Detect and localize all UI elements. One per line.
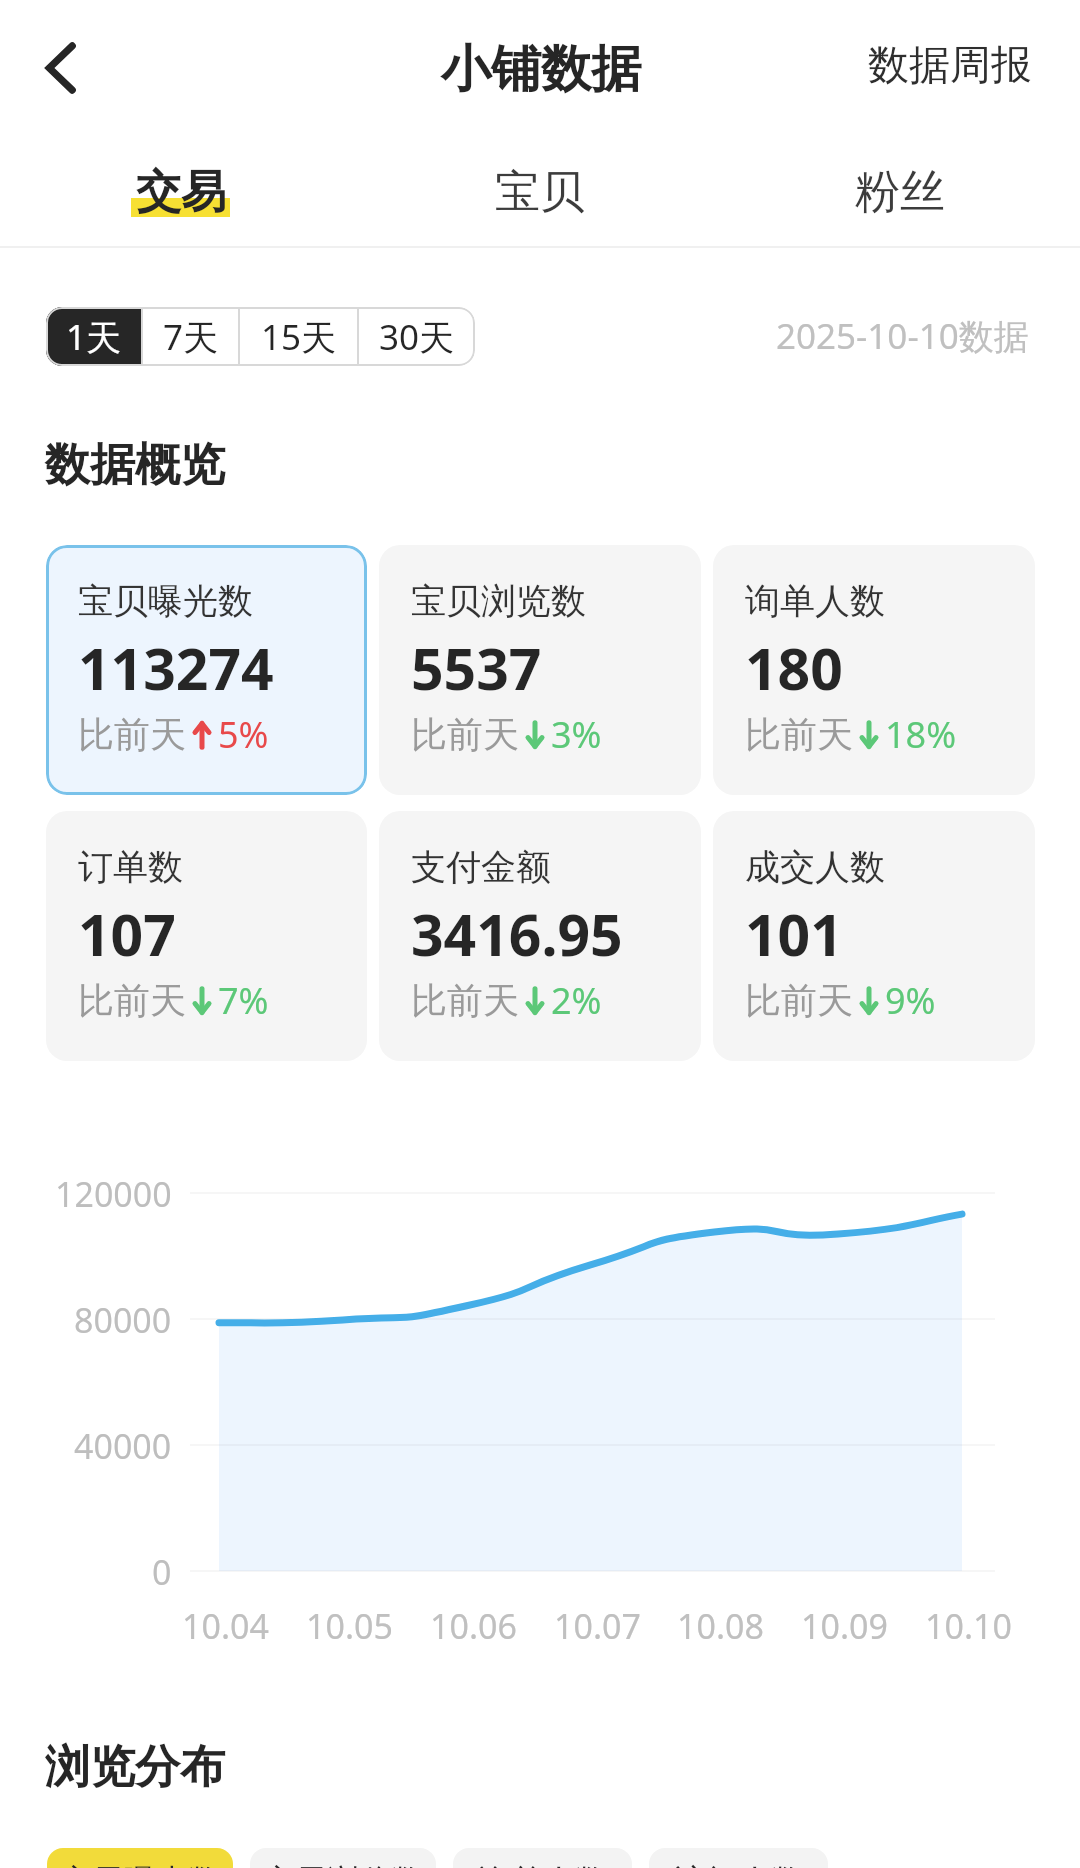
staticText: 107 [78,895,176,973]
staticText: 访问人数 [675,1861,803,1868]
staticText: 9% [885,976,936,1025]
button[interactable]: 数据周报 [868,40,1032,92]
staticText: 10.06 [430,1603,517,1649]
button[interactable]: 宝贝曝光数 [47,1848,233,1868]
staticText: 180 [745,629,843,707]
staticText: 比前天 [745,978,853,1023]
staticText: 3416.95 [411,895,623,973]
staticText: 小铺数据 [441,38,641,101]
button[interactable]: 15天 [240,307,357,366]
staticText: 成交人数 [745,845,885,889]
staticText: 宝贝 [495,164,585,221]
staticText: 113274 [78,629,274,707]
button[interactable]: 询单人数 [453,1848,632,1868]
button[interactable]: 宝贝浏览数 [250,1848,436,1868]
staticText: 粉丝 [855,164,945,221]
staticText: 10.07 [554,1603,641,1649]
button[interactable]: 返回 [14,24,102,112]
staticText: 2% [551,976,602,1025]
staticText: 3% [551,710,602,759]
button[interactable]: 7天 [143,307,238,366]
button[interactable]: 宝贝浏览数 [379,545,701,795]
staticText: 订单数 [78,845,183,889]
staticText: 比前天 [745,712,853,757]
staticText: 5537 [411,629,542,707]
button[interactable]: 订单数 [46,811,367,1061]
staticText: 比前天 [411,978,519,1023]
staticText: 宝贝浏览数 [263,1861,423,1868]
staticText: 40000 [74,1423,172,1469]
staticText: 10.05 [306,1603,393,1649]
staticText: 比前天 [78,978,186,1023]
staticText: 支付金额 [411,845,551,889]
staticText: 7天 [163,313,219,361]
button[interactable]: 宝贝 [360,146,720,238]
staticText: 2025-10-10数据 [776,312,1029,360]
staticText: 10.09 [801,1603,888,1649]
button[interactable]: 成交人数 [713,811,1035,1061]
staticText: 10.04 [182,1603,269,1649]
staticText: 80000 [74,1297,172,1343]
staticText: 宝贝曝光数 [60,1861,220,1868]
staticText: 宝贝曝光数 [78,579,253,623]
staticText: 5% [218,710,269,759]
button[interactable]: 访问人数 [649,1848,828,1868]
button[interactable]: 支付金额 [379,811,701,1061]
staticText: 7% [218,976,269,1025]
staticText: 10.08 [677,1603,764,1649]
staticText: 30天 [379,313,455,361]
staticText: 比前天 [411,712,519,757]
button[interactable]: 1天 [46,307,141,366]
staticText: 120000 [55,1171,172,1217]
button[interactable]: 交易 [0,146,360,238]
staticText: 交易 [136,164,226,221]
staticText: 宝贝浏览数 [411,579,586,623]
staticText: 比前天 [78,712,186,757]
staticText: 15天 [261,313,337,361]
staticText: 1天 [66,313,122,361]
button[interactable]: 询单人数 [713,545,1035,795]
staticText: 询单人数 [479,1861,607,1868]
button[interactable]: 30天 [359,307,475,366]
staticText: 数据周报 [868,40,1032,92]
staticText: 101 [745,895,843,973]
staticText: 0 [152,1549,172,1595]
staticText: 10.10 [925,1603,1012,1649]
button[interactable]: 粉丝 [720,146,1080,238]
staticText: 数据概览 [45,437,225,494]
staticText: 18% [885,710,957,759]
staticText: 询单人数 [745,579,885,623]
staticText: 浏览分布 [45,1739,225,1796]
button[interactable]: 宝贝曝光数 [46,545,367,795]
